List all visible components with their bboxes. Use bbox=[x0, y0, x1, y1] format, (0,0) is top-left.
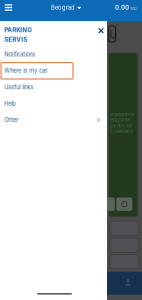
staticText: PARKING bbox=[4, 26, 32, 34]
button[interactable]: Beograd bbox=[46, 1, 86, 13]
staticText: e i stanicama bbox=[110, 129, 133, 134]
staticText: Other bbox=[4, 117, 18, 123]
staticText: SERVIS bbox=[4, 36, 27, 43]
button[interactable]: Where is my car bbox=[0, 63, 107, 79]
staticText: Beograd bbox=[51, 4, 75, 11]
staticText: Help bbox=[4, 100, 15, 107]
button[interactable]: Menu bbox=[2, 1, 14, 13]
staticText: Notifications bbox=[4, 51, 35, 58]
staticText: U bbox=[109, 29, 116, 41]
staticText: Where is my car bbox=[4, 67, 47, 74]
staticText: vrijeme do is bbox=[110, 112, 134, 117]
button[interactable]: Notifications bbox=[0, 46, 107, 63]
staticText: RSD bbox=[130, 6, 137, 11]
staticText: 0.00 bbox=[115, 4, 129, 11]
button[interactable]: Useful links bbox=[0, 79, 107, 95]
button[interactable]: Help bbox=[0, 95, 107, 112]
staticText: Useful links bbox=[4, 84, 33, 91]
staticText: ga, opis zon bbox=[110, 123, 132, 128]
button[interactable]: Other bbox=[0, 112, 107, 128]
button[interactable]: Close menu bbox=[95, 25, 106, 36]
staticText: teka parkin bbox=[110, 118, 130, 123]
